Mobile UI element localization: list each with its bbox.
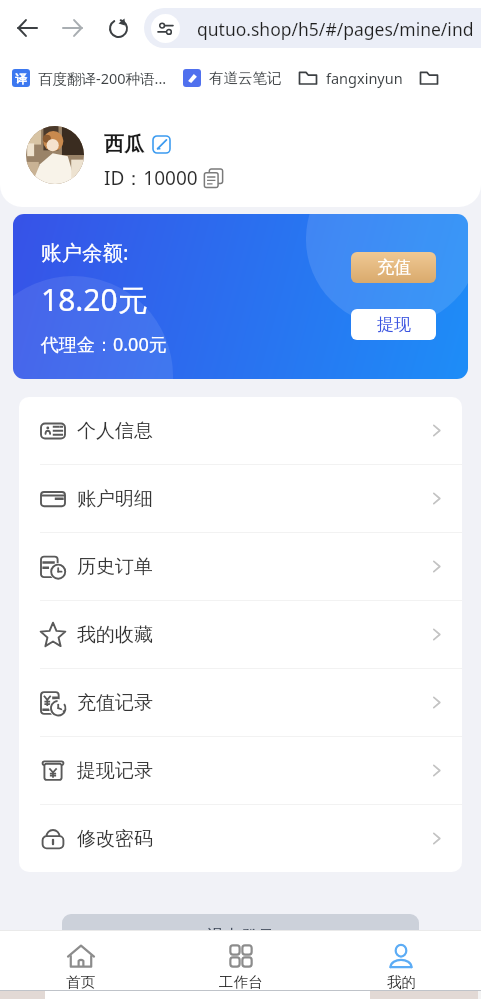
button[interactable]: 我的收藏 (19, 601, 462, 668)
button[interactable]: 个人信息 (19, 397, 462, 464)
staticText: 提现记录 (77, 759, 153, 783)
button[interactable]: 充值 (351, 252, 436, 283)
staticText: 代理金：0.00元 (41, 332, 167, 357)
staticText: 工作台 (219, 973, 263, 991)
button[interactable]: qutuo.shop/h5/#/pages/mine/ind (144, 8, 481, 48)
staticText: 西瓜 (104, 132, 144, 157)
staticText: 个人信息 (77, 419, 153, 443)
button[interactable]: Back (7, 8, 47, 48)
staticText: 译 (15, 71, 27, 86)
staticText: 首页 (66, 973, 95, 991)
staticText: 账户余额: (41, 238, 129, 266)
button[interactable]: 修改密码 (19, 805, 462, 872)
staticText: 有道云笔记 (209, 69, 282, 87)
button[interactable]: 有道云笔记 (177, 64, 288, 92)
button[interactable]: Edit name (152, 135, 171, 154)
staticText: 退出登录 (207, 926, 275, 947)
other: Folder (298, 68, 318, 88)
button[interactable]: 历史订单 (19, 533, 462, 600)
button[interactable]: Forward (53, 8, 93, 48)
button[interactable]: Folder (413, 63, 445, 93)
staticText: 充值记录 (77, 691, 153, 715)
button[interactable]: Folder (292, 63, 409, 93)
button[interactable]: 提现记录 (19, 737, 462, 804)
staticText: 我的收藏 (77, 623, 153, 647)
button[interactable]: Avatar (26, 126, 84, 184)
button[interactable]: 工作台 (161, 935, 321, 996)
staticText: fangxinyun (326, 68, 403, 88)
staticText: qutuo.shop/h5/#/pages/mine/ind (197, 17, 474, 41)
staticText: 提现 (377, 314, 411, 335)
staticText: 充值 (377, 257, 411, 278)
button[interactable]: 我的 (321, 935, 481, 996)
staticText: 账户明细 (77, 487, 153, 511)
button[interactable]: 提现 (351, 309, 436, 340)
other: Folder (419, 68, 439, 88)
staticText: 历史订单 (77, 555, 153, 579)
staticText: 18.20元 (41, 279, 148, 320)
button[interactable]: Reload (98, 8, 138, 48)
staticText: 百度翻译-200种语... (38, 68, 167, 88)
button[interactable]: 首页 (0, 935, 161, 996)
staticText: 我的 (387, 973, 416, 991)
button[interactable]: 译 (6, 63, 173, 93)
button[interactable]: 退出登录 (62, 914, 419, 958)
staticText: ID：10000 (104, 165, 198, 191)
button[interactable]: 账户明细 (19, 465, 462, 532)
button[interactable]: Copy ID (204, 169, 223, 188)
button[interactable]: 充值记录 (19, 669, 462, 736)
staticText: 修改密码 (77, 827, 153, 851)
